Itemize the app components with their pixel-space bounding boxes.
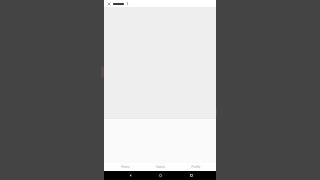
button[interactable]: Home <box>155 171 165 180</box>
staticText: Saved <box>156 165 165 169</box>
button[interactable]: Close <box>106 1 112 7</box>
staticText: Profile <box>191 165 201 169</box>
button[interactable]: Saved <box>145 163 175 171</box>
button[interactable]: Recent apps <box>186 171 196 180</box>
button[interactable]: Home <box>110 163 140 171</box>
button[interactable] <box>113 3 124 5</box>
staticText: Home <box>121 165 130 169</box>
button[interactable]: Profile <box>181 163 211 171</box>
button[interactable]: Back <box>125 171 135 180</box>
